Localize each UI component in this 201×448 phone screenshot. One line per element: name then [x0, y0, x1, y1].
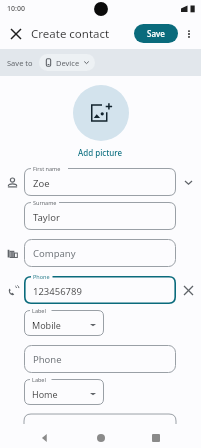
staticText: 123456789 — [33, 285, 82, 298]
button[interactable]: Clear phone — [176, 276, 201, 304]
staticText: Company — [33, 247, 76, 260]
staticText: Create contact — [31, 26, 110, 42]
staticText: First name — [33, 165, 61, 172]
staticText: Label — [32, 307, 46, 314]
button[interactable]: Phone — [24, 345, 176, 373]
button[interactable]: Label — [24, 379, 104, 405]
button[interactable]: More options — [179, 24, 199, 44]
button[interactable]: Close — [4, 22, 28, 46]
button[interactable]: Home — [90, 427, 112, 448]
button[interactable]: Label — [24, 310, 104, 336]
button[interactable]: Company — [24, 239, 176, 267]
staticText: Save to — [7, 58, 33, 68]
button[interactable] — [24, 414, 176, 424]
staticText: Surname — [33, 199, 57, 206]
button[interactable]: Save — [134, 24, 178, 43]
staticText: Taylor — [33, 211, 60, 224]
button[interactable]: Surname — [24, 202, 176, 230]
button[interactable]: Add picture — [78, 147, 123, 158]
staticText: Zoe — [33, 177, 50, 190]
button[interactable]: Phone — [24, 276, 176, 304]
staticText: Mobile — [32, 319, 61, 331]
staticText: Device — [56, 58, 80, 68]
button[interactable]: Device — [39, 54, 95, 71]
staticText: Phone — [33, 353, 62, 366]
button[interactable]: Add picture — [73, 85, 129, 141]
staticText: Phone — [33, 273, 50, 280]
button[interactable]: Expand name fields — [176, 168, 201, 196]
button[interactable]: Back — [34, 427, 56, 448]
staticText: Home — [32, 388, 58, 400]
staticText: Save — [147, 28, 165, 39]
button[interactable]: Recent apps — [145, 427, 167, 448]
staticText: Label — [32, 376, 46, 383]
staticText: 10:00 — [7, 4, 25, 14]
button[interactable]: First name — [24, 168, 176, 196]
